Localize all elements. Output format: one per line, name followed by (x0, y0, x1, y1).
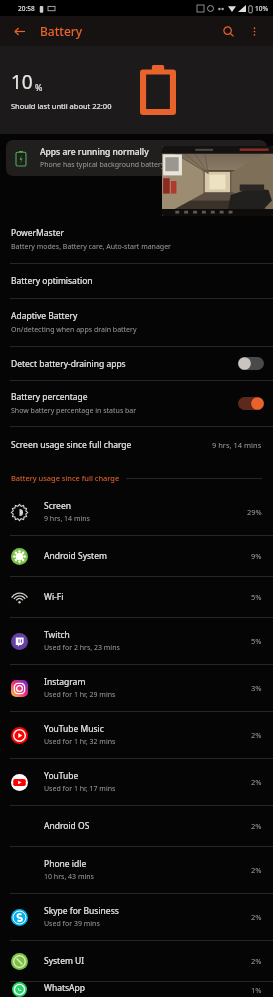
button[interactable]: PowerMaster (0, 216, 273, 263)
staticText: 2% (251, 912, 262, 922)
staticText: YouTube (44, 770, 79, 782)
staticText: YouTube Music (44, 723, 104, 735)
button[interactable]: YouTube Music (0, 712, 273, 758)
staticText: Battery modes, Battery care, Auto-start … (11, 242, 172, 252)
staticText: 20:58 (18, 4, 35, 13)
staticText: Used for 1 hr, 29 mins (44, 690, 116, 700)
button[interactable]: YouTube (0, 759, 273, 805)
staticText: Screen (44, 500, 71, 512)
staticText: Used for 1 hr, 17 mins (44, 784, 116, 794)
staticText: % (35, 81, 43, 93)
button[interactable]: Phone idle (0, 847, 273, 893)
staticText: Adaptive Battery (11, 310, 78, 322)
staticText: Phone idle (44, 858, 87, 870)
staticText: Apps are running normally (40, 146, 149, 158)
staticText: Show battery percentage in status bar (11, 406, 137, 416)
staticText: Android OS (44, 820, 90, 832)
staticText: 2% (251, 865, 262, 875)
button[interactable]: Android OS (0, 806, 273, 846)
staticText: Battery percentage (11, 391, 88, 403)
staticText: Used for 39 mins (44, 919, 100, 929)
staticText: Twitch (44, 629, 70, 641)
staticText: 2% (251, 956, 262, 966)
staticText: 29% (247, 507, 262, 517)
staticText: 9 hrs, 14 mins (44, 514, 90, 524)
button[interactable]: Search (217, 20, 239, 42)
button[interactable]: Instagram (0, 665, 273, 711)
button[interactable]: Screen usage since full charge (0, 427, 273, 463)
staticText: Detect battery-draining apps (11, 358, 126, 370)
staticText: Skype for Business (44, 905, 119, 917)
staticText: 10% (255, 4, 268, 13)
staticText: Battery (40, 23, 83, 39)
button[interactable]: Twitch (0, 618, 273, 664)
button[interactable]: Android System (0, 536, 273, 576)
staticText: Android System (44, 550, 107, 562)
staticText: System UI (44, 955, 85, 967)
staticText: 2% (251, 821, 262, 831)
button[interactable]: WhatsApp (0, 982, 273, 997)
staticText: Should last until about 22:00 (11, 101, 112, 111)
staticText: PowerMaster (11, 227, 65, 239)
staticText: Battery optimisation (11, 275, 93, 287)
button[interactable]: Adaptive Battery (0, 299, 273, 346)
button[interactable]: Skype for Business (0, 894, 273, 940)
staticText: 10 hrs, 43 mins (44, 872, 94, 882)
staticText: Used for 1 hr, 32 mins (44, 737, 116, 747)
staticText: 5% (251, 636, 262, 646)
staticText: Used for 2 hrs, 23 mins (44, 643, 120, 653)
staticText: WhatsApp (44, 982, 85, 994)
button[interactable]: Apps are running normally (6, 140, 267, 176)
staticText: 9% (251, 551, 262, 561)
staticText: Battery usage since full charge (11, 473, 120, 483)
button[interactable]: Battery percentage (0, 381, 273, 426)
staticText: 5% (251, 592, 262, 602)
staticText: Phone has typical background battery usa… (40, 160, 187, 170)
button[interactable]: Detect battery-draining apps (0, 347, 273, 380)
button[interactable]: Screen (0, 489, 273, 535)
staticText: On/detecting when apps drain battery (11, 325, 137, 335)
button[interactable]: System UI (0, 941, 273, 981)
staticText: Screen usage since full charge (11, 439, 212, 451)
staticText: Wi-Fi (44, 591, 64, 603)
button[interactable] (162, 146, 273, 216)
staticText: 10 (11, 69, 33, 95)
staticText: 2% (251, 777, 262, 787)
staticText: Instagram (44, 676, 86, 688)
staticText: 9 hrs, 14 mins (212, 440, 262, 450)
button[interactable]: Wi-Fi (0, 577, 273, 617)
button[interactable]: Back (8, 20, 30, 42)
staticText: 1% (251, 985, 262, 995)
staticText: 2% (251, 730, 262, 740)
staticText: 3% (251, 683, 262, 693)
button[interactable]: Battery optimisation (0, 264, 273, 298)
button[interactable]: More options (243, 20, 265, 42)
